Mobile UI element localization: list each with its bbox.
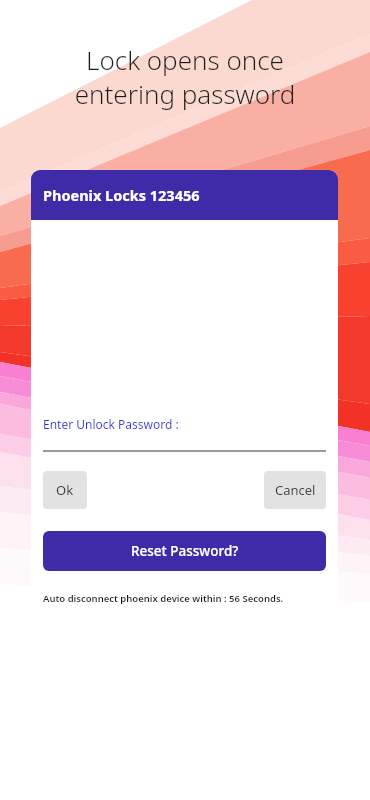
staticText: Ok [56, 481, 74, 499]
staticText: Lock opens once entering password [0, 42, 370, 111]
button[interactable]: Cancel [264, 471, 326, 509]
staticText: Phoenix Locks 123456 [43, 185, 200, 205]
staticText: Auto disconnect phoenix device within : … [43, 592, 284, 605]
button[interactable]: Reset Password? [43, 531, 326, 571]
button[interactable]: Phoenix Locks 123456 [31, 170, 338, 220]
staticText: Enter Unlock Password : [43, 416, 179, 432]
staticText: Reset Password? [131, 542, 239, 560]
button[interactable]: Ok [43, 471, 87, 509]
staticText: Cancel [275, 481, 316, 499]
